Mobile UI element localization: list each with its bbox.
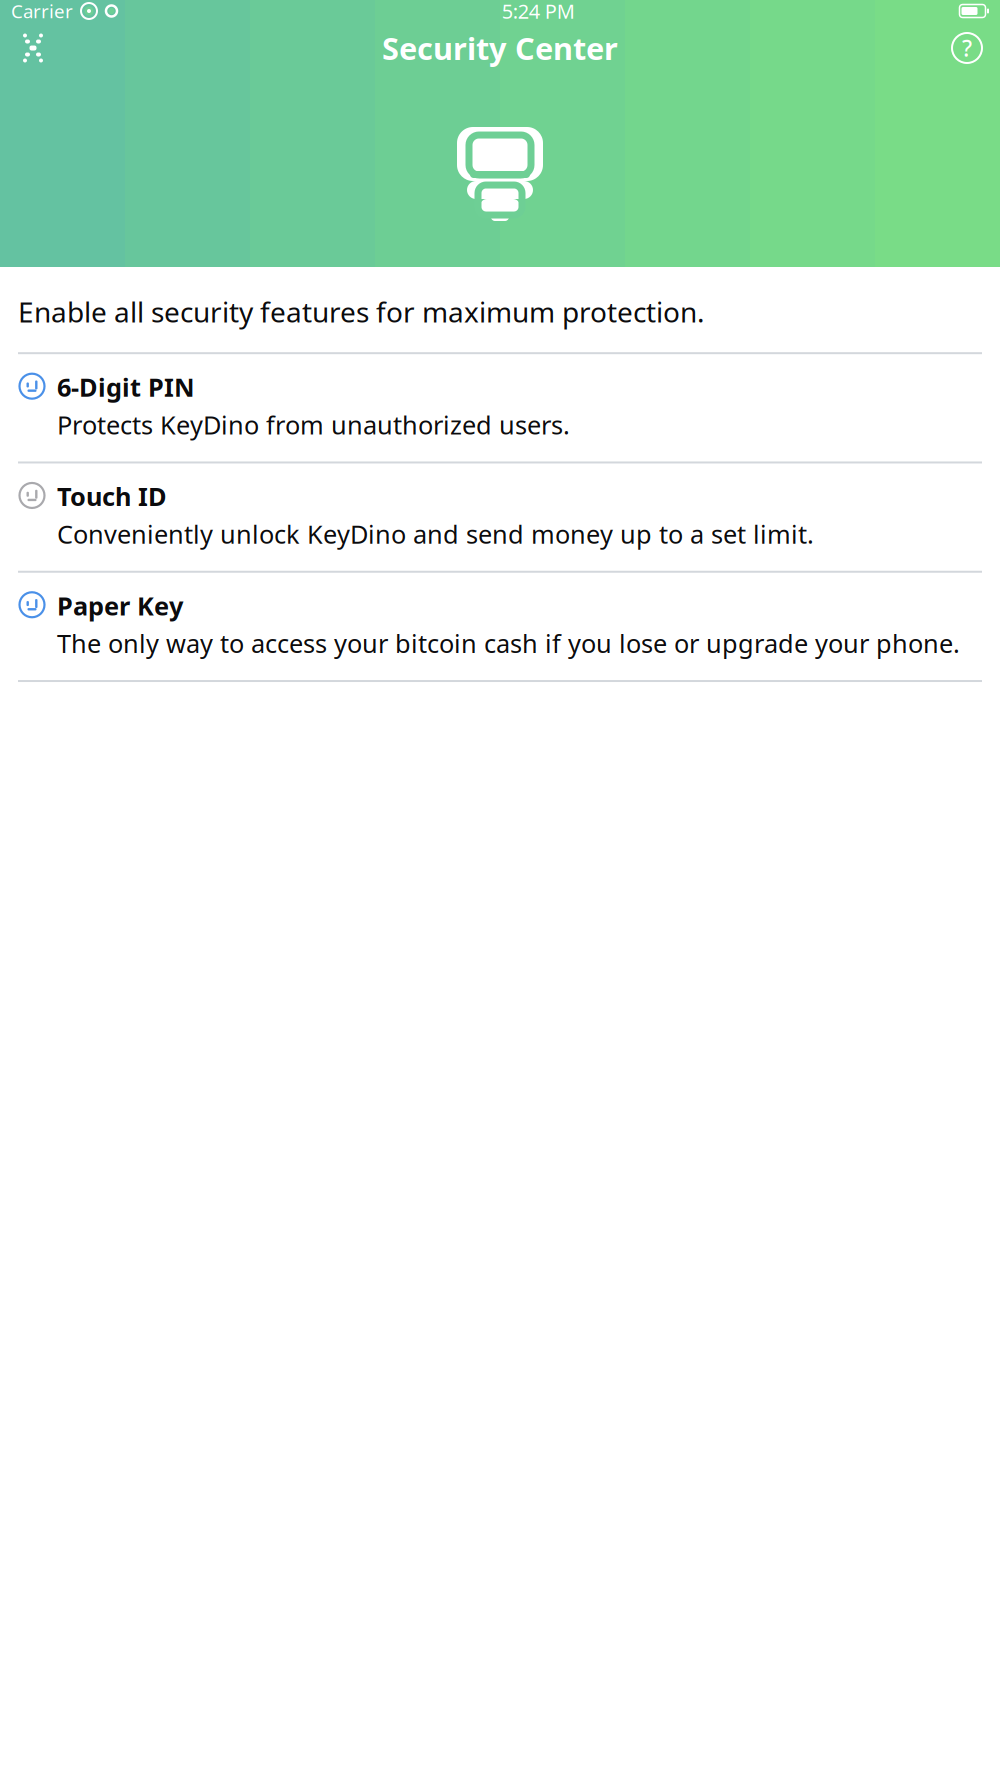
staticText: Security Center [382,28,618,68]
staticText: ? [962,33,972,63]
staticText: Protects KeyDino from unauthorized users… [57,408,570,441]
staticText: 5:24 PM [502,0,575,24]
button[interactable]: Close [10,25,56,71]
button[interactable]: Paper Key [0,573,1000,680]
staticText: Paper Key [57,589,183,622]
button[interactable]: 6-Digit PIN [0,354,1000,461]
staticText: Conveniently unlock KeyDino and send mon… [57,517,814,551]
button[interactable]: Touch ID [0,463,1000,571]
staticText: Carrier [11,0,73,23]
button[interactable]: Help [944,25,990,71]
staticText: Enable all security features for maximum… [18,293,705,330]
staticText: 6-Digit PIN [57,370,195,404]
staticText: The only way to access your bitcoin cash… [57,626,960,660]
staticText: Touch ID [57,479,167,513]
